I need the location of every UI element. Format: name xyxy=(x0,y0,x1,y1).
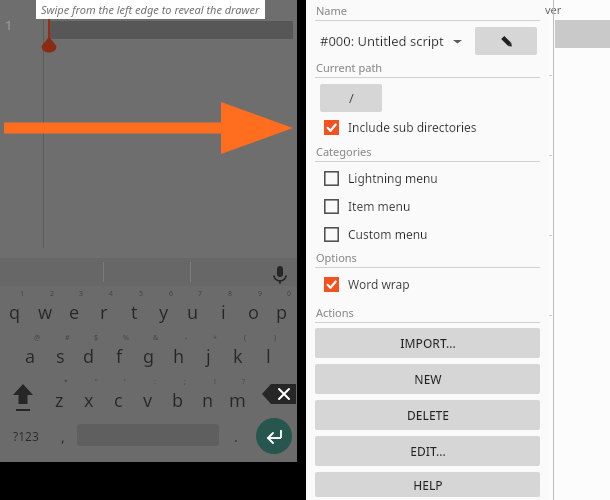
button[interactable]: Word wrap xyxy=(324,276,549,292)
staticText: Lightning menu xyxy=(348,170,438,186)
staticText: 0 xyxy=(287,289,292,299)
staticText: m xyxy=(229,388,246,413)
staticText: s xyxy=(56,344,65,369)
staticText: 3 xyxy=(79,289,84,299)
button[interactable]: : xyxy=(133,376,163,418)
staticText: Actions xyxy=(316,305,354,320)
button[interactable]: Enter xyxy=(256,418,292,454)
button[interactable]: IMPORT... xyxy=(315,328,540,358)
staticText: ? xyxy=(242,377,246,387)
staticText: Options xyxy=(316,250,357,265)
button[interactable]: % xyxy=(104,332,134,374)
button[interactable]: Edit name xyxy=(475,27,537,55)
staticText: DELETE xyxy=(407,407,449,423)
button[interactable]: Shift xyxy=(8,378,38,412)
staticText: q xyxy=(9,300,21,325)
staticText: a xyxy=(25,344,36,369)
staticText: p xyxy=(276,300,288,325)
button[interactable]: Include sub directories xyxy=(324,119,549,135)
button[interactable]: ( xyxy=(223,332,253,374)
button[interactable]: / xyxy=(320,84,382,112)
button[interactable]: ? xyxy=(222,376,252,418)
staticText: 1 xyxy=(20,289,25,299)
staticText: l xyxy=(266,344,271,369)
button[interactable]: NEW xyxy=(315,364,540,394)
button[interactable]: 6 xyxy=(149,288,179,330)
button[interactable]: , xyxy=(50,420,76,452)
button[interactable]: $ xyxy=(74,332,104,374)
staticText: b xyxy=(172,388,184,413)
staticText: % xyxy=(123,333,129,343)
button[interactable]: 7 xyxy=(178,288,208,330)
button[interactable]: " xyxy=(74,376,104,418)
staticText: IMPORT... xyxy=(400,335,456,351)
staticText: 4 xyxy=(109,289,114,299)
button[interactable]: ; xyxy=(163,376,193,418)
staticText: z xyxy=(55,388,64,413)
staticText: #000: Untitled script xyxy=(320,32,444,50)
button[interactable]: Voice input xyxy=(268,262,292,286)
button[interactable]: 2 xyxy=(30,288,60,330)
staticText: v xyxy=(143,388,153,413)
staticText: @ xyxy=(34,333,41,343)
staticText: d xyxy=(83,344,95,369)
staticText: NEW xyxy=(414,371,442,387)
button[interactable]: 4 xyxy=(89,288,119,330)
staticText: t xyxy=(131,300,138,325)
staticText: " xyxy=(95,377,98,387)
staticText: j xyxy=(206,344,211,369)
staticText: w xyxy=(38,300,53,325)
staticText: 5 xyxy=(139,289,144,299)
button[interactable]: ) xyxy=(253,332,283,374)
button[interactable]: ?123 xyxy=(6,420,46,452)
button[interactable]: * xyxy=(44,376,74,418)
button[interactable]: 0 xyxy=(267,288,297,330)
button[interactable]: @ xyxy=(15,332,45,374)
button[interactable]: Custom menu xyxy=(324,226,549,242)
staticText: HELP xyxy=(413,477,443,493)
staticText: n xyxy=(202,388,214,413)
staticText: , xyxy=(61,427,65,446)
button[interactable]: 9 xyxy=(238,288,268,330)
staticText: . xyxy=(234,427,238,446)
staticText: Word wrap xyxy=(348,276,410,292)
staticText: 7 xyxy=(198,289,203,299)
staticText: r xyxy=(100,300,108,325)
staticText: EDIT... xyxy=(410,443,446,459)
button[interactable]: DELETE xyxy=(315,400,540,430)
staticText: & xyxy=(153,333,159,343)
staticText: h xyxy=(173,344,185,369)
staticText: + xyxy=(213,333,218,343)
button[interactable]: 3 xyxy=(59,288,89,330)
staticText: Swipe from the left edge to reveal the d… xyxy=(41,2,260,17)
button[interactable]: # xyxy=(45,332,75,374)
staticText: Custom menu xyxy=(348,226,428,242)
staticText: Name xyxy=(316,3,348,18)
button[interactable]: ! xyxy=(193,376,223,418)
staticText: * xyxy=(64,377,68,387)
button[interactable]: Backspace xyxy=(258,380,292,408)
staticText: Include sub directories xyxy=(348,119,477,135)
staticText: ' xyxy=(124,377,126,387)
staticText: 2 xyxy=(50,289,55,299)
button[interactable]: 1 xyxy=(0,288,30,330)
button[interactable]: 8 xyxy=(208,288,238,330)
staticText: 1 xyxy=(5,16,13,34)
staticText: k xyxy=(233,344,243,369)
button[interactable]: #000: Untitled script xyxy=(320,27,475,55)
button[interactable]: HELP xyxy=(315,472,540,497)
button[interactable]: + xyxy=(193,332,223,374)
button[interactable]: - xyxy=(164,332,194,374)
button[interactable]: & xyxy=(134,332,164,374)
button[interactable]: 5 xyxy=(119,288,149,330)
button[interactable]: EDIT... xyxy=(315,436,540,466)
staticText: - xyxy=(185,333,188,343)
staticText: ?123 xyxy=(13,428,39,444)
staticText: ) xyxy=(274,333,277,343)
button[interactable]: Lightning menu xyxy=(324,170,549,186)
button[interactable]: ' xyxy=(103,376,133,418)
staticText: g xyxy=(143,344,155,369)
button[interactable]: Item menu xyxy=(324,198,549,214)
